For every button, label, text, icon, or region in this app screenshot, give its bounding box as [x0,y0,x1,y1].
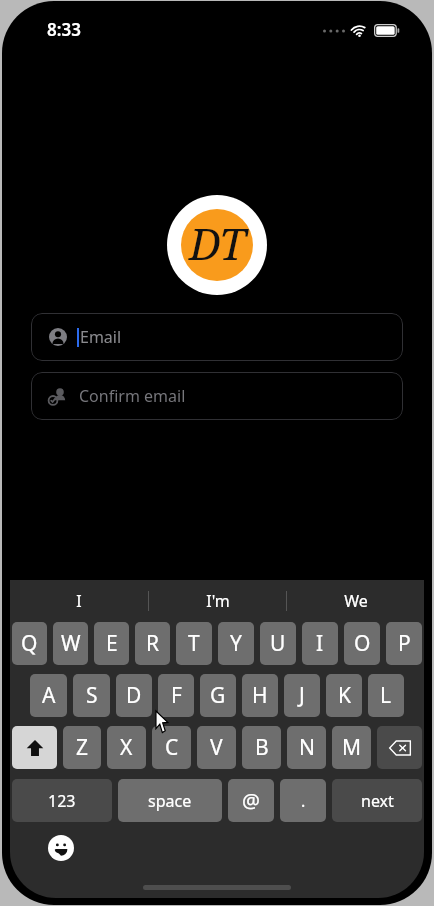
button[interactable]: P [386,622,422,665]
staticText: O [354,629,371,658]
button[interactable]: Backspace [377,726,422,769]
button[interactable]: G [200,674,236,717]
button[interactable]: Confirm email [31,372,403,420]
button[interactable]: R [135,622,170,665]
button[interactable]: We [287,580,424,622]
button[interactable]: Emoji [48,835,74,861]
staticText: W [61,629,81,658]
staticText: U [270,629,286,658]
button[interactable]: I [302,622,338,665]
staticText: I'm [206,590,230,612]
staticText: V [210,733,223,762]
button[interactable]: K [326,674,362,717]
button[interactable]: . [280,779,326,822]
button[interactable]: X [107,726,146,769]
staticText: We [344,590,368,612]
staticText: DT [189,213,245,273]
staticText: X [120,733,133,762]
button[interactable]: D [116,674,152,717]
button[interactable]: @ [228,779,274,822]
button[interactable]: A [30,674,67,717]
button[interactable]: F [158,674,194,717]
staticText: M [342,733,362,762]
button[interactable]: V [197,726,236,769]
button[interactable]: U [260,622,296,665]
button[interactable]: DT logo [167,195,267,295]
button[interactable]: C [152,726,191,769]
button[interactable]: W [53,622,88,665]
button[interactable]: Q [12,622,47,665]
staticText: Y [230,629,242,658]
staticText: S [86,681,98,710]
button[interactable]: Y [218,622,254,665]
staticText: I [316,629,324,658]
staticText: G [210,681,226,710]
staticText: Email [80,326,122,348]
staticText: H [252,681,268,710]
staticText: T [188,629,200,658]
staticText: L [380,681,392,710]
button[interactable]: space [118,779,222,822]
staticText: I [76,590,82,612]
button[interactable]: next [332,779,422,822]
button[interactable]: N [287,726,326,769]
button[interactable]: J [284,674,320,717]
staticText: E [106,629,118,658]
staticText: F [171,681,182,710]
button[interactable]: 123 [12,779,112,822]
button[interactable]: B [242,726,281,769]
staticText: 8:33 [47,18,81,41]
button[interactable]: T [176,622,212,665]
button[interactable]: O [344,622,380,665]
staticText: B [255,733,269,762]
staticText: Confirm email [79,385,186,407]
button[interactable]: S [73,674,110,717]
staticText: K [338,681,351,710]
staticText: D [126,681,142,710]
button[interactable]: E [94,622,129,665]
staticText: N [299,733,315,762]
button[interactable]: Shift [12,726,57,769]
button[interactable]: Z [63,726,101,769]
staticText: . [301,790,306,812]
staticText: 123 [48,790,76,812]
staticText: Z [76,733,89,762]
staticText: A [42,681,56,710]
button[interactable]: M [332,726,371,769]
staticText: J [299,681,305,710]
button[interactable]: Email [31,313,403,361]
button[interactable]: H [242,674,278,717]
button[interactable]: I [10,580,148,622]
button[interactable]: L [368,674,404,717]
staticText: @ [242,787,260,814]
staticText: C [165,733,179,762]
button[interactable]: I'm [149,580,286,622]
staticText: R [146,629,160,658]
staticText: next [361,790,394,812]
staticText: P [398,629,411,658]
staticText: space [148,790,192,812]
staticText: Q [21,629,38,658]
